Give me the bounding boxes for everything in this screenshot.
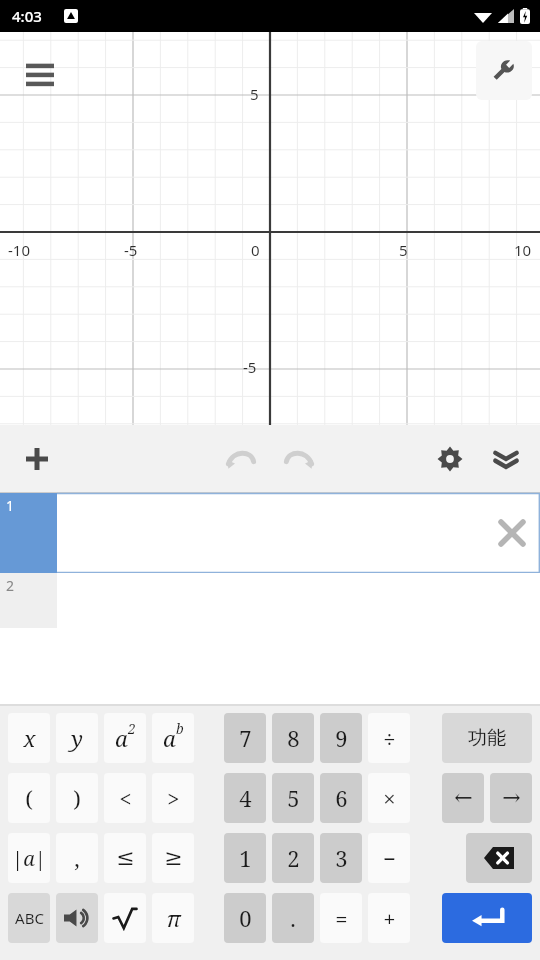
button[interactable]: 功能	[442, 713, 532, 763]
button[interactable]: 6	[320, 773, 362, 823]
staticText: −	[383, 843, 396, 873]
staticText: 9	[335, 723, 348, 753]
staticText: 5	[399, 240, 408, 260]
button[interactable]: 8	[272, 713, 314, 763]
button[interactable]: )	[56, 773, 98, 823]
staticText: ≤	[116, 845, 135, 871]
staticText: a	[163, 723, 176, 753]
staticText: 2	[287, 843, 300, 873]
staticText: 1	[239, 843, 252, 873]
staticText: π	[166, 903, 181, 933]
button[interactable]: Delete expression	[492, 513, 532, 553]
staticText: 10	[514, 240, 532, 260]
staticText: 5	[250, 84, 259, 104]
staticText: →	[502, 785, 521, 811]
button[interactable]: ,	[56, 833, 98, 883]
staticText: ×	[383, 783, 396, 813]
staticText: y	[71, 723, 83, 753]
staticText: ,	[74, 843, 80, 873]
staticText: 7	[239, 723, 252, 753]
staticText: 6	[335, 783, 348, 813]
button[interactable]: |a|	[8, 833, 50, 883]
staticText: =	[335, 903, 348, 933]
button[interactable]: <	[104, 773, 146, 823]
staticText: 8	[287, 723, 300, 753]
button[interactable]: 1	[0, 493, 540, 573]
button[interactable]: 5	[272, 773, 314, 823]
button[interactable]: 9	[320, 713, 362, 763]
button[interactable]: ×	[368, 773, 410, 823]
staticText: ≥	[164, 845, 183, 871]
button[interactable]: 1	[224, 833, 266, 883]
staticText: a	[115, 723, 128, 753]
staticText: 4	[239, 783, 252, 813]
button[interactable]: 2	[272, 833, 314, 883]
button[interactable]: >	[152, 773, 194, 823]
staticText: 0	[251, 240, 260, 260]
button[interactable]: Sound	[56, 893, 98, 943]
button[interactable]: +	[368, 893, 410, 943]
button[interactable]: Collapse keypad	[484, 437, 528, 481]
button[interactable]: 7	[224, 713, 266, 763]
button[interactable]: π	[152, 893, 194, 943]
staticText: 4:03	[12, 6, 42, 26]
button[interactable]: Backspace	[466, 833, 532, 883]
staticText: -5	[124, 240, 138, 260]
button[interactable]: ÷	[368, 713, 410, 763]
button[interactable]: x	[8, 713, 50, 763]
button[interactable]: 4	[224, 773, 266, 823]
staticText: 0	[239, 903, 252, 933]
button[interactable]: =	[320, 893, 362, 943]
button[interactable]: Enter	[442, 893, 532, 943]
button[interactable]: Undo	[219, 437, 263, 481]
staticText: .	[290, 903, 296, 933]
button[interactable]: Menu	[18, 58, 62, 94]
button[interactable]: Settings	[428, 437, 472, 481]
button[interactable]: −	[368, 833, 410, 883]
staticText: <	[119, 783, 132, 813]
button[interactable]	[104, 893, 146, 943]
staticText: >	[167, 783, 180, 813]
staticText: 2	[6, 576, 15, 595]
button[interactable]: 3	[320, 833, 362, 883]
staticText: +	[383, 903, 396, 933]
staticText: x	[23, 723, 36, 753]
button[interactable]: 0	[224, 893, 266, 943]
button[interactable]: ≥	[152, 833, 194, 883]
button[interactable]: y	[56, 713, 98, 763]
staticText: (	[25, 783, 33, 813]
button[interactable]: 2	[0, 573, 540, 628]
staticText: 1	[6, 496, 15, 515]
button[interactable]: Graph settings	[476, 41, 532, 100]
button[interactable]: ≤	[104, 833, 146, 883]
button[interactable]: (	[8, 773, 50, 823]
button[interactable]: Add expression	[14, 436, 60, 482]
staticText: ABC	[15, 908, 44, 928]
staticText: |a|	[12, 845, 46, 872]
button[interactable]: .	[272, 893, 314, 943]
button[interactable]: Move right	[490, 773, 532, 823]
button[interactable]: a	[104, 713, 146, 763]
staticText: b	[176, 719, 184, 738]
staticText: 5	[287, 783, 300, 813]
staticText: 3	[335, 843, 348, 873]
staticText: )	[73, 783, 81, 813]
button[interactable]: Redo	[277, 437, 321, 481]
staticText: -5	[243, 357, 257, 377]
staticText: 功能	[468, 726, 506, 750]
staticText: ÷	[383, 723, 396, 753]
button[interactable]: a	[152, 713, 194, 763]
button[interactable]: ABC	[8, 893, 50, 943]
staticText: -10	[8, 240, 30, 260]
staticText: 2	[128, 719, 136, 738]
button[interactable]: Move left	[442, 773, 484, 823]
staticText: ←	[454, 785, 473, 811]
